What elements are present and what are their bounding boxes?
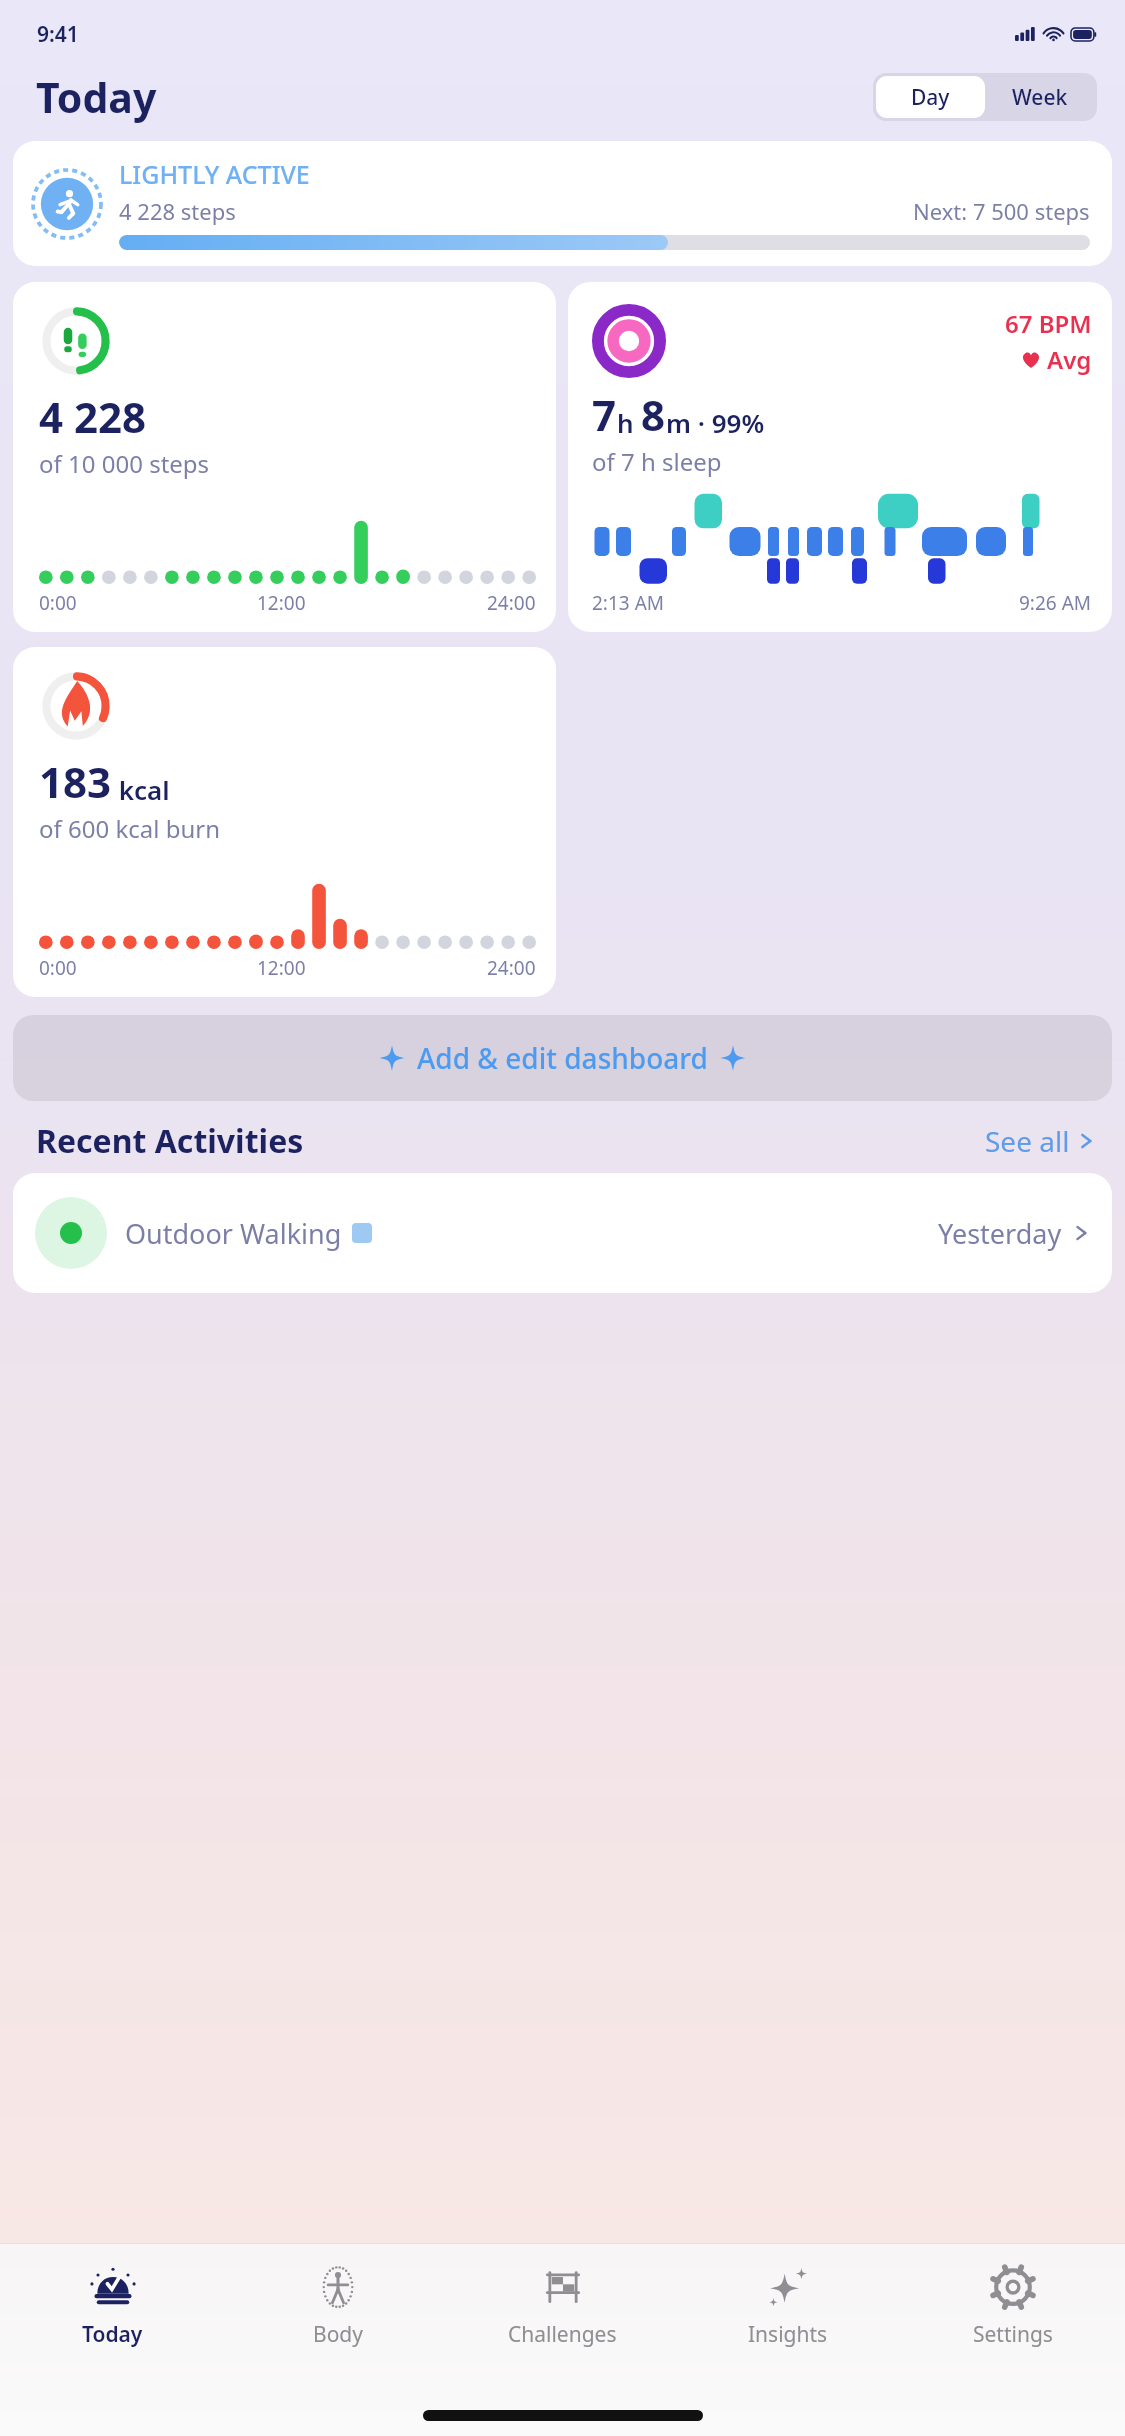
staticText: 12:00 [257, 590, 306, 616]
staticText: 7 [592, 386, 617, 443]
staticText: of 600 kcal burn [39, 812, 221, 845]
staticText: of 7 h sleep [592, 445, 722, 478]
button[interactable]: Body [225, 2258, 450, 2394]
button[interactable]: Outdoor Walking [13, 1173, 1112, 1293]
staticText: 24:00 [487, 590, 536, 616]
staticText: 8 [641, 386, 666, 443]
button[interactable]: 67 BPM [568, 282, 1112, 632]
staticText: Add & edit dashboard [417, 1039, 708, 1077]
staticText: LIGHTLY ACTIVE [119, 157, 310, 191]
button[interactable]: LIGHTLY ACTIVE [13, 141, 1112, 266]
staticText: Settings [973, 2320, 1053, 2349]
staticText: Today [36, 69, 157, 125]
staticText: 9:41 [37, 20, 79, 49]
staticText: 0:00 [39, 955, 77, 981]
staticText: Challenges [508, 2320, 617, 2349]
staticText: 9:26 AM [1019, 590, 1092, 616]
staticText: Next: 7 500 steps [913, 196, 1090, 226]
staticText: of 10 000 steps [39, 447, 210, 480]
button[interactable]: Settings [900, 2258, 1125, 2394]
staticText: Recent Activities [36, 1119, 304, 1163]
button[interactable]: Day [876, 76, 985, 118]
button[interactable]: Insights [675, 2258, 900, 2394]
staticText: See all [985, 1122, 1070, 1160]
staticText: 67 BPM [1005, 307, 1092, 340]
staticText: Yesterday [938, 1215, 1062, 1252]
staticText: Today [82, 2320, 143, 2349]
staticText: 2:13 AM [592, 590, 665, 616]
button[interactable]: 4 228 [13, 282, 556, 632]
button[interactable]: Today [0, 2258, 225, 2394]
button[interactable]: See all [985, 1122, 1095, 1160]
staticText: Avg [1047, 343, 1092, 376]
button[interactable]: Week [985, 76, 1094, 118]
staticText: Insights [748, 2320, 828, 2349]
staticText: 4 228 [39, 388, 147, 445]
staticText: 183 [39, 753, 112, 810]
staticText: m · 99% [666, 405, 765, 440]
button[interactable]: Add & edit dashboard [13, 1015, 1112, 1101]
button[interactable]: 183 [13, 647, 556, 997]
staticText: h [617, 405, 641, 440]
staticText: 0:00 [39, 590, 77, 616]
staticText: Outdoor Walking [125, 1215, 342, 1252]
staticText: 4 228 steps [119, 196, 236, 226]
staticText: Day [911, 83, 950, 112]
staticText: 12:00 [257, 955, 306, 981]
staticText: Body [313, 2320, 363, 2349]
staticText: 24:00 [487, 955, 536, 981]
button[interactable]: Challenges [450, 2258, 675, 2394]
staticText: Week [1012, 83, 1068, 112]
staticText: kcal [112, 772, 170, 807]
